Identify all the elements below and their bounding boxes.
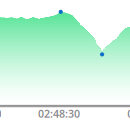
staticText: 02:48:30	[38, 106, 80, 121]
staticText: 02:49:30	[127, 106, 130, 121]
staticText: 02:47:30	[0, 106, 1, 121]
